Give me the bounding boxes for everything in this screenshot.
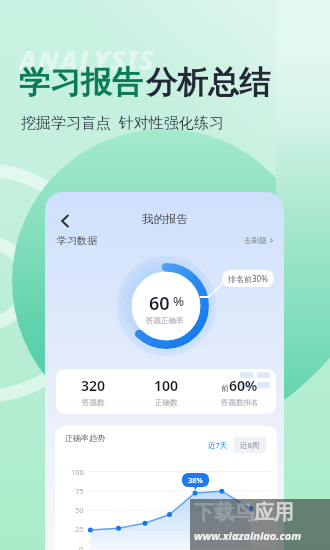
staticText: 正确率趋势: [65, 433, 105, 443]
button[interactable]: 近7天: [208, 440, 228, 450]
staticText: 100: [71, 467, 84, 477]
staticText: 60%: [229, 376, 258, 395]
button[interactable]: 100: [130, 376, 203, 407]
staticText: 学习数据: [57, 234, 97, 247]
staticText: 学习报告: [19, 63, 143, 102]
staticText: 前: [221, 383, 229, 393]
staticText: 去刷题: [244, 236, 267, 245]
staticText: 近8周: [240, 440, 260, 450]
staticText: 答题数: [82, 398, 105, 407]
staticText: 分析总结: [146, 63, 270, 102]
staticText: %: [173, 292, 185, 310]
staticText: 100: [154, 376, 179, 395]
staticText: 50: [75, 505, 84, 515]
staticText: www.xiazainiao.com: [194, 528, 302, 543]
button[interactable]: Back: [54, 210, 76, 232]
staticText: 应用: [254, 500, 294, 525]
staticText: 我的报告: [142, 212, 188, 226]
staticText: 0: [79, 544, 84, 550]
staticText: 排名前30%: [228, 273, 268, 284]
staticText: 320: [81, 376, 106, 395]
staticText: 下载鸟: [194, 500, 254, 525]
button[interactable]: 近8周: [240, 440, 260, 450]
staticText: 正确数: [155, 398, 178, 407]
button[interactable]: 320: [56, 376, 130, 407]
staticText: 38%: [188, 475, 203, 485]
staticText: 答题数排名: [221, 398, 259, 407]
button[interactable]: 去刷题: [244, 236, 274, 245]
staticText: ANALYSIS: [19, 41, 155, 78]
staticText: 近7天: [208, 440, 228, 450]
staticText: 答题正确率: [146, 316, 184, 325]
staticText: 25: [75, 524, 84, 534]
staticText: 60: [149, 291, 170, 316]
staticText: 挖掘学习盲点 针对性强化练习: [21, 112, 224, 132]
button[interactable]: 前: [203, 376, 276, 407]
staticText: 75: [75, 486, 84, 496]
